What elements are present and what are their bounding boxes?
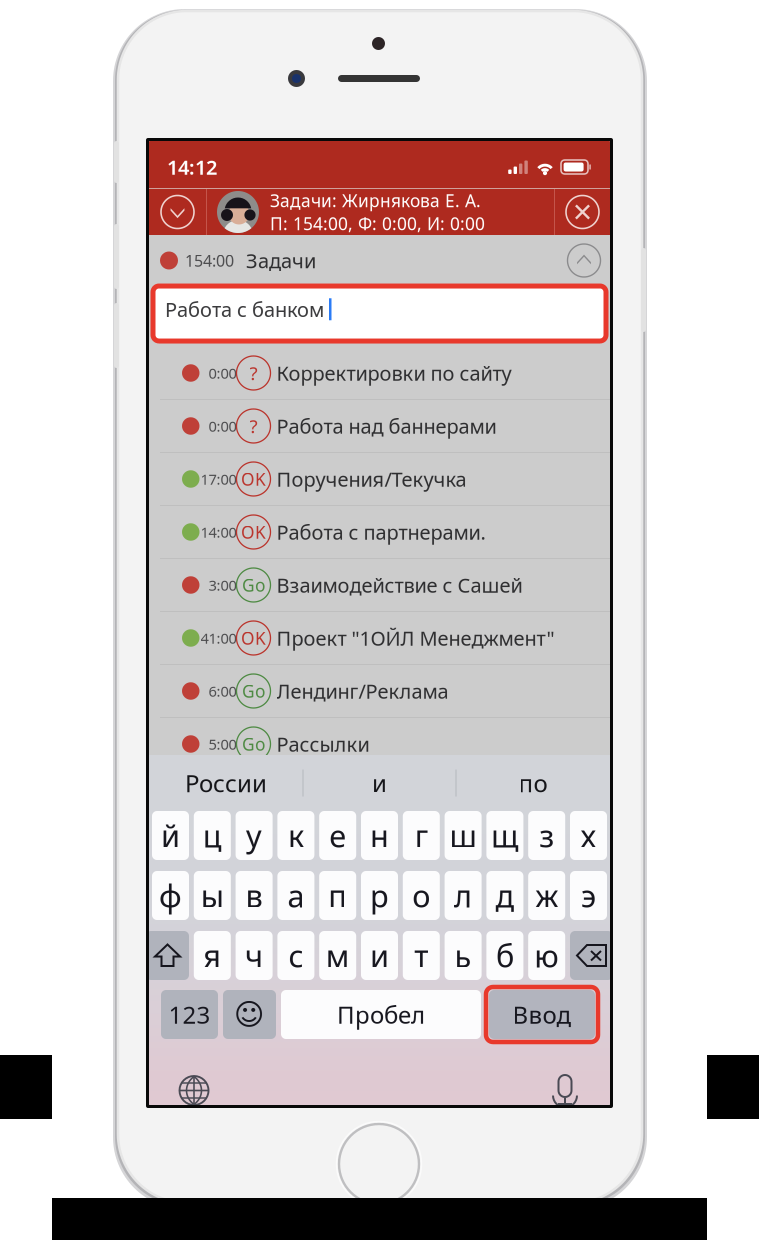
staticText: я	[203, 935, 221, 976]
button[interactable]: я	[194, 931, 231, 980]
staticText: 0:00	[208, 363, 236, 383]
staticText: е	[329, 815, 346, 856]
button[interactable]: к	[277, 811, 314, 860]
button[interactable]: э	[570, 871, 607, 920]
button[interactable]: т	[403, 931, 440, 980]
staticText: Проект "1ОЙЛ Менеджмент"	[276, 625, 554, 651]
button[interactable]: Close	[555, 189, 610, 235]
staticText: ж	[535, 875, 558, 916]
button[interactable]: по	[456, 756, 609, 809]
button[interactable]: а	[277, 871, 314, 920]
button[interactable]: Shift	[146, 931, 189, 980]
button[interactable]: 17:00	[149, 453, 610, 506]
staticText: б	[496, 935, 514, 976]
button[interactable]: Collapse section	[558, 237, 610, 284]
button[interactable]: Dictate	[520, 1075, 610, 1106]
button[interactable]: й	[152, 811, 189, 860]
button[interactable]: и	[303, 756, 455, 809]
button[interactable]: и	[361, 931, 398, 980]
staticText: 14:00	[200, 522, 236, 542]
staticText: 6:00	[208, 681, 236, 701]
button[interactable]: о	[403, 871, 440, 920]
button[interactable]: с	[277, 931, 314, 980]
staticText: н	[370, 815, 389, 856]
button[interactable]: х	[570, 811, 607, 860]
staticText: ?	[249, 361, 257, 385]
button[interactable]: Backspace	[570, 931, 613, 980]
staticText: х	[580, 815, 596, 856]
staticText: 0:00	[208, 416, 236, 436]
staticText: Работа с банком	[165, 296, 324, 323]
button[interactable]: 5:00	[149, 718, 610, 771]
staticText: Пробел	[337, 999, 425, 1030]
button[interactable]: России	[149, 756, 302, 809]
staticText: й	[161, 815, 180, 856]
button[interactable]: 6:00	[149, 665, 610, 718]
button[interactable]: Ввод	[489, 990, 595, 1039]
button[interactable]: ы	[194, 871, 231, 920]
staticText: OK	[241, 626, 266, 649]
staticText: Работа с партнерами.	[276, 519, 485, 545]
button[interactable]: ч	[236, 931, 273, 980]
button[interactable]: ☺	[223, 990, 276, 1039]
button[interactable]: 41:00	[149, 612, 610, 665]
staticText: и	[372, 767, 387, 799]
button[interactable]: ш	[445, 811, 482, 860]
button[interactable]: ь	[445, 931, 482, 980]
staticText: и	[370, 935, 389, 976]
staticText: о	[412, 875, 430, 916]
staticText: э	[581, 875, 596, 916]
staticText: Задачи: Жирнякова Е. А.	[270, 189, 481, 212]
staticText: ?	[249, 414, 257, 438]
button[interactable]: у	[236, 811, 273, 860]
staticText: 14:12	[167, 154, 217, 180]
button[interactable]: 123	[161, 990, 218, 1039]
button[interactable]: е	[319, 811, 356, 860]
staticText: л	[454, 875, 472, 916]
staticText: 41:00	[200, 628, 236, 648]
staticText: П: 154:00, Ф: 0:00, И: 0:00	[270, 212, 485, 235]
button[interactable]: Задачи: Жирнякова Е. А.	[207, 189, 554, 235]
staticText: OK	[241, 467, 266, 490]
staticText: Корректировки по сайту	[276, 360, 511, 386]
staticText: Go	[242, 732, 265, 755]
button[interactable]: н	[361, 811, 398, 860]
button[interactable]: 14:00	[149, 506, 610, 559]
button[interactable]: б	[486, 931, 523, 980]
staticText: ☺	[234, 998, 265, 1031]
staticText: по	[518, 767, 547, 799]
staticText: г	[415, 815, 428, 856]
staticText: щ	[491, 815, 519, 856]
button[interactable]: Change keyboard	[149, 1075, 239, 1105]
staticText: Взаимодействие с Сашей	[276, 572, 522, 598]
staticText: 3:00	[208, 575, 236, 595]
button[interactable]: г	[403, 811, 440, 860]
staticText: а	[287, 875, 304, 916]
staticText: Лендинг/Реклама	[276, 678, 448, 704]
button[interactable]: Пробел	[281, 990, 481, 1039]
staticText: Go	[242, 573, 265, 596]
button[interactable]: 0:00	[149, 347, 610, 400]
staticText: с	[288, 935, 303, 976]
button[interactable]: п	[319, 871, 356, 920]
button[interactable]: в	[236, 871, 273, 920]
button[interactable]: ж	[528, 871, 565, 920]
staticText: ш	[450, 815, 477, 856]
staticText: ь	[455, 935, 472, 976]
button[interactable]: Collapse	[149, 189, 206, 235]
button[interactable]: л	[445, 871, 482, 920]
button[interactable]: ю	[528, 931, 565, 980]
staticText: д	[495, 875, 514, 916]
button[interactable]: ф	[152, 871, 189, 920]
button[interactable]: 0:00	[149, 400, 610, 453]
button[interactable]: ц	[194, 811, 231, 860]
button[interactable]: д	[486, 871, 523, 920]
button[interactable]: м	[319, 931, 356, 980]
staticText: ч	[245, 935, 263, 976]
staticText: Рассылки	[276, 731, 369, 757]
button[interactable]: з	[528, 811, 565, 860]
button[interactable]: р	[361, 871, 398, 920]
button[interactable]: щ	[486, 811, 523, 860]
button[interactable]: 3:00	[149, 559, 610, 612]
staticText: т	[414, 935, 428, 976]
